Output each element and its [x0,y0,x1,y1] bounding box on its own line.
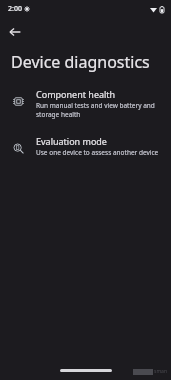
staticText: 2:00 [8,4,22,14]
staticText: Device diagnostics [11,51,150,73]
button[interactable]: Back [4,21,26,43]
staticText: Run manual tests and view battery and st… [36,101,159,119]
staticText: sman [154,368,167,375]
staticText: Evaluation mode [36,135,107,147]
button[interactable]: Component health [0,84,171,123]
button[interactable]: Evaluation mode [0,131,171,161]
staticText: Component health [36,88,116,100]
staticText: Use one device to assess another device [36,148,159,157]
